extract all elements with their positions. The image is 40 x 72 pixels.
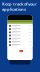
button[interactable]: Application (7, 40, 32, 43)
button[interactable]: Application (7, 31, 32, 34)
button[interactable]: Application (7, 43, 32, 47)
button[interactable]: Application (7, 34, 32, 37)
button[interactable]: Application (7, 27, 32, 31)
button[interactable]: Application (7, 37, 32, 40)
button[interactable]: Application (7, 24, 32, 27)
staticText: applications (2, 6, 26, 12)
staticText: Keep track of your (2, 1, 37, 6)
